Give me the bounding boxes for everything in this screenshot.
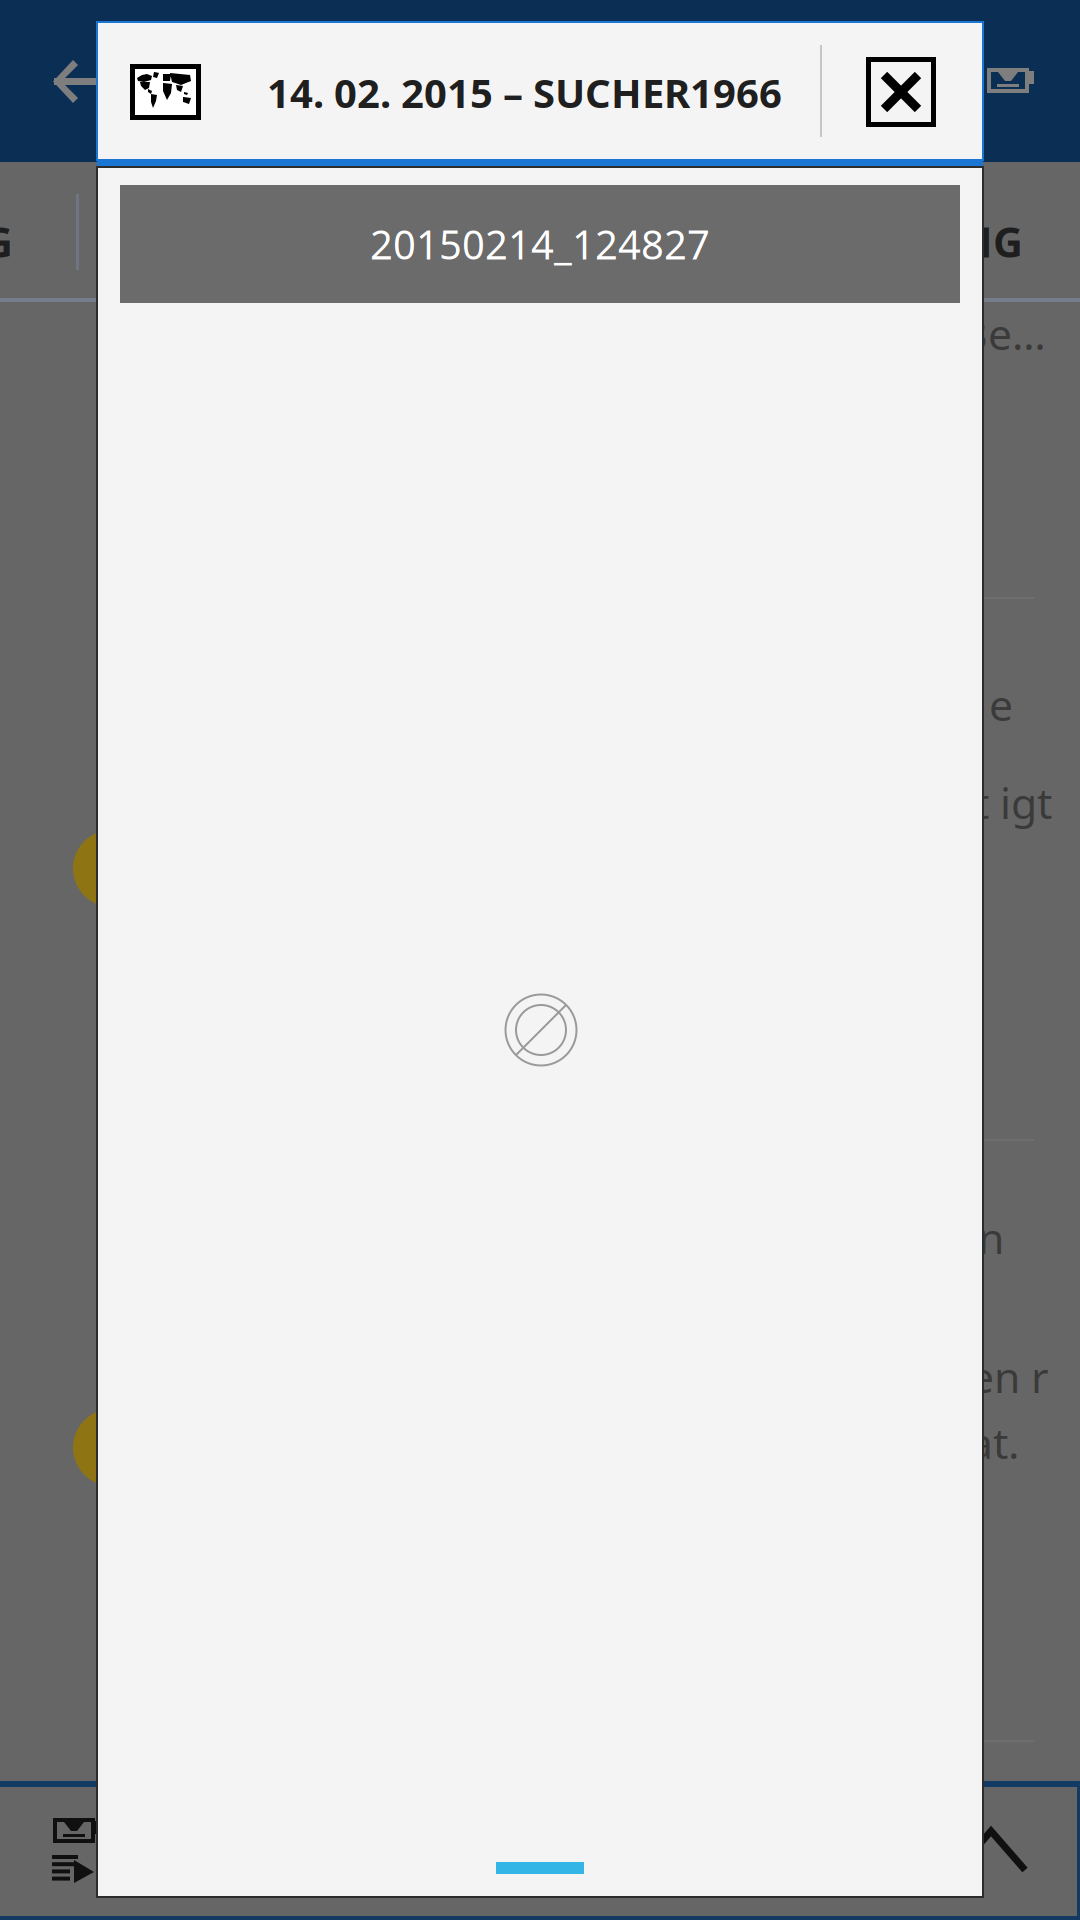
staticText: Vielen Dank für Ihre Nachricht an unsern	[190, 1209, 1004, 1266]
staticText: Guten Tag, anbei übersenden wir Ihnen e	[190, 676, 1013, 733]
staticText: 14. 02. 2015 – SUCHER1966	[267, 66, 782, 119]
staticText: aufgenommen und melden uns bei Ihnen r	[190, 1348, 1049, 1405]
button[interactable]: Close	[866, 57, 936, 127]
button[interactable]: Archive	[986, 67, 1036, 94]
staticText: Sehr geehrte Damen und Herren, hierg	[190, 261, 972, 318]
staticText: AUFTRAG	[0, 214, 13, 269]
button[interactable]: Expand	[953, 1827, 1029, 1875]
button[interactable]: Back	[53, 58, 101, 105]
staticText: sobald der Sachbearbeiter es geprüft hat…	[190, 1414, 1019, 1471]
staticText: wir den Eingang Ihrer Bestellung. Ihre B…	[190, 305, 1046, 362]
button[interactable]: Inbox	[52, 1817, 108, 1887]
staticText: 20150214_124827	[370, 217, 710, 270]
staticText: Unterlagen. Die Bearbeitung erfolgt zeit…	[190, 774, 1052, 831]
staticText: ANMELDUNG	[750, 214, 1023, 269]
button[interactable]: Location	[130, 64, 201, 120]
